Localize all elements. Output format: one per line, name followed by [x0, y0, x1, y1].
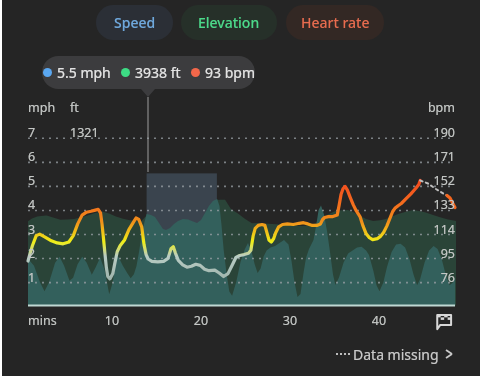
staticText: 152	[395, 172, 455, 189]
staticText: 114	[395, 221, 455, 238]
staticText: 3938 ft	[135, 63, 181, 82]
button[interactable]: Elevation	[181, 5, 277, 40]
staticText: 95	[395, 245, 455, 262]
staticText: 40	[359, 312, 399, 329]
staticText: Heart rate	[301, 13, 370, 32]
staticText: ft	[70, 99, 79, 116]
staticText: 5.5 mph	[57, 63, 111, 82]
staticText: 76	[395, 269, 455, 286]
staticText: Elevation	[198, 13, 260, 32]
staticText: 1321	[70, 124, 99, 141]
staticText: 5	[28, 172, 36, 189]
staticText: bpm	[395, 99, 455, 116]
staticText: Speed	[114, 13, 156, 32]
button[interactable]: Finish flag	[434, 312, 452, 330]
staticText: 30	[270, 312, 310, 329]
staticText: 2	[28, 245, 36, 262]
button[interactable]: Data missing	[336, 344, 456, 364]
staticText: 4	[28, 196, 36, 213]
staticText: 190	[395, 124, 455, 141]
staticText: 3	[28, 221, 36, 238]
staticText: 93 bpm	[205, 63, 255, 82]
staticText: 20	[181, 312, 221, 329]
staticText: 133	[395, 196, 455, 213]
staticText: mph	[28, 99, 56, 116]
staticText: Data missing	[353, 345, 439, 364]
button[interactable]: Heart rate	[286, 5, 384, 40]
button[interactable]: Speed	[96, 5, 173, 40]
staticText: 6	[28, 148, 36, 165]
button[interactable]: 5.5 mph	[42, 56, 255, 89]
staticText: 1	[28, 269, 36, 286]
staticText: 7	[28, 124, 36, 141]
staticText: 171	[395, 148, 455, 165]
staticText: 10	[92, 312, 132, 329]
staticText: mins	[28, 312, 57, 329]
